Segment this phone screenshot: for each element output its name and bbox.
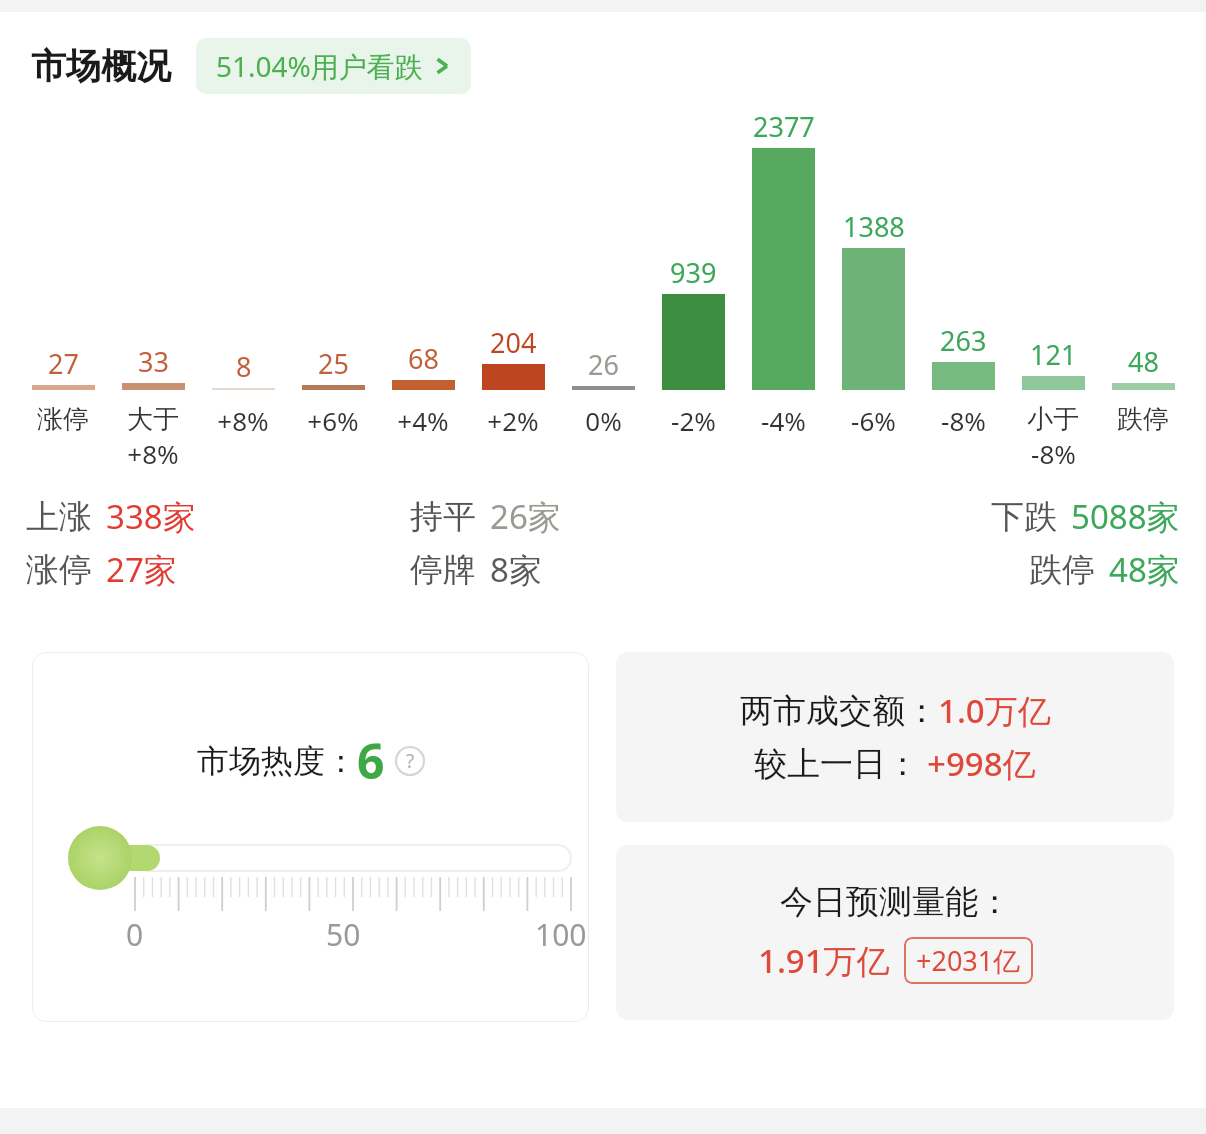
staticText: 涨停 bbox=[37, 403, 89, 436]
staticText: 5088家 bbox=[1071, 494, 1180, 539]
staticText: 33 bbox=[138, 343, 169, 380]
staticText: 涨停 bbox=[26, 549, 92, 591]
staticText: 263 bbox=[940, 322, 987, 359]
staticText: -8% bbox=[941, 403, 986, 438]
staticText: 27家 bbox=[106, 547, 177, 592]
staticText: 今日预测量能： bbox=[780, 881, 1011, 923]
staticText: 26家 bbox=[490, 494, 561, 539]
staticText: +998亿 bbox=[927, 741, 1036, 786]
staticText: +6% bbox=[307, 403, 359, 438]
staticText: 停牌 bbox=[410, 549, 476, 591]
staticText: 25 bbox=[318, 345, 349, 382]
staticText: 204 bbox=[490, 324, 537, 361]
staticText: -6% bbox=[851, 403, 896, 438]
button[interactable]: 51.04%用户看跌 bbox=[196, 38, 471, 94]
staticText: +8% bbox=[127, 436, 179, 471]
staticText: +8% bbox=[217, 403, 269, 438]
staticText: 1.0万亿 bbox=[938, 688, 1051, 733]
staticText: ? bbox=[406, 748, 415, 774]
staticText: -2% bbox=[671, 403, 716, 438]
staticText: 338家 bbox=[106, 494, 196, 539]
button[interactable]: 说明 bbox=[395, 746, 425, 776]
staticText: 0% bbox=[585, 403, 622, 438]
staticText: 48 bbox=[1128, 343, 1159, 380]
button[interactable]: 两市成交额： bbox=[616, 652, 1174, 822]
staticText: 26 bbox=[588, 346, 619, 383]
staticText: 两市成交额： bbox=[740, 690, 938, 732]
staticText: +4% bbox=[397, 403, 449, 438]
staticText: 市场热度： bbox=[197, 741, 357, 781]
staticText: 48家 bbox=[1109, 547, 1180, 592]
staticText: 27 bbox=[48, 345, 79, 382]
staticText: 8 bbox=[236, 348, 252, 385]
staticText: 较上一日： bbox=[754, 743, 919, 785]
staticText: +2% bbox=[487, 403, 539, 438]
staticText: 6 bbox=[357, 728, 385, 793]
staticText: 跌停 bbox=[1029, 549, 1095, 591]
staticText: -4% bbox=[761, 403, 806, 438]
staticText: 68 bbox=[408, 340, 439, 377]
button[interactable]: 市场热度： bbox=[32, 652, 589, 1022]
staticText: -8% bbox=[1031, 436, 1076, 471]
staticText: 1388 bbox=[843, 208, 905, 245]
staticText: 持平 bbox=[410, 496, 476, 538]
staticText: 51.04%用户看跌 bbox=[216, 47, 423, 85]
staticText: 上涨 bbox=[26, 496, 92, 538]
staticText: 跌停 bbox=[1117, 403, 1169, 436]
staticText: 121 bbox=[1030, 336, 1077, 373]
staticText: 939 bbox=[670, 254, 717, 291]
staticText: 0 bbox=[126, 914, 144, 955]
staticText: 大于 bbox=[127, 403, 179, 436]
staticText: +2031亿 bbox=[916, 942, 1021, 979]
staticText: 8家 bbox=[490, 547, 542, 592]
staticText: 下跌 bbox=[991, 496, 1057, 538]
staticText: 2377 bbox=[753, 108, 815, 145]
staticText: 50 bbox=[326, 914, 361, 955]
button[interactable]: 今日预测量能： bbox=[616, 845, 1174, 1020]
staticText: 1.91万亿 bbox=[758, 938, 890, 983]
staticText: 市场概况 bbox=[31, 44, 171, 88]
staticText: 小于 bbox=[1027, 403, 1079, 436]
staticText: 100 bbox=[535, 914, 587, 955]
